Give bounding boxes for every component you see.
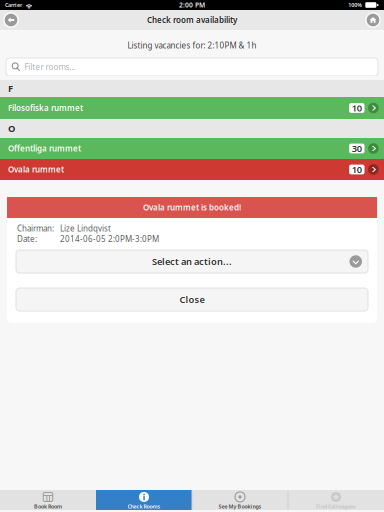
staticText: Check Rooms xyxy=(127,503,160,510)
button[interactable]: Back xyxy=(0,10,21,30)
button[interactable]: Check Rooms xyxy=(96,490,192,510)
staticText: Date: xyxy=(17,234,37,244)
staticText: Ovala rummet is booked! xyxy=(143,202,241,213)
staticText: 2014-06-05 2:0PM-3:0PM xyxy=(60,234,159,244)
button[interactable]: Select an action... xyxy=(16,250,368,273)
staticText: Ovala rummet xyxy=(8,164,64,175)
staticText: 30 xyxy=(352,142,362,155)
staticText: 100% xyxy=(348,1,362,9)
button[interactable]: Close xyxy=(16,288,368,311)
button[interactable]: Home xyxy=(362,10,383,30)
staticText: Filosofiska rummet xyxy=(8,103,83,113)
staticText: Check room availability xyxy=(147,15,237,25)
staticText: Find Colleagues xyxy=(316,503,356,510)
button[interactable]: Offentliga rummet xyxy=(0,138,384,159)
staticText: Close xyxy=(179,293,204,306)
staticText: Select an action... xyxy=(152,255,232,268)
staticText: 10 xyxy=(352,102,362,114)
staticText: Book Room xyxy=(34,503,62,510)
staticText: Chairman: xyxy=(17,223,54,234)
staticText: Filter rooms... xyxy=(24,62,75,72)
button[interactable]: Find Colleagues xyxy=(288,490,384,510)
button[interactable]: Filosofiska rummet xyxy=(0,97,384,119)
button[interactable]: See My Bookings xyxy=(192,490,288,510)
staticText: Offentliga rummet xyxy=(8,143,81,154)
staticText: F xyxy=(8,82,13,95)
staticText: 2:00 PM xyxy=(179,1,205,9)
staticText: 10 xyxy=(352,163,362,176)
staticText: Listing vacancies for: 2:10PM & 1h xyxy=(127,40,256,51)
button[interactable]: Ovala rummet xyxy=(0,159,384,180)
staticText: Lize Lindqvist xyxy=(60,223,111,234)
button[interactable]: Book Room xyxy=(0,490,96,510)
staticText: See My Bookings xyxy=(218,503,261,510)
staticText: Carrier xyxy=(5,1,22,9)
staticText: O xyxy=(8,122,15,135)
